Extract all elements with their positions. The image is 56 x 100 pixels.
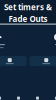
staticText: Set timers &	[4, 2, 52, 12]
staticText: Fade Outs	[8, 13, 47, 24]
